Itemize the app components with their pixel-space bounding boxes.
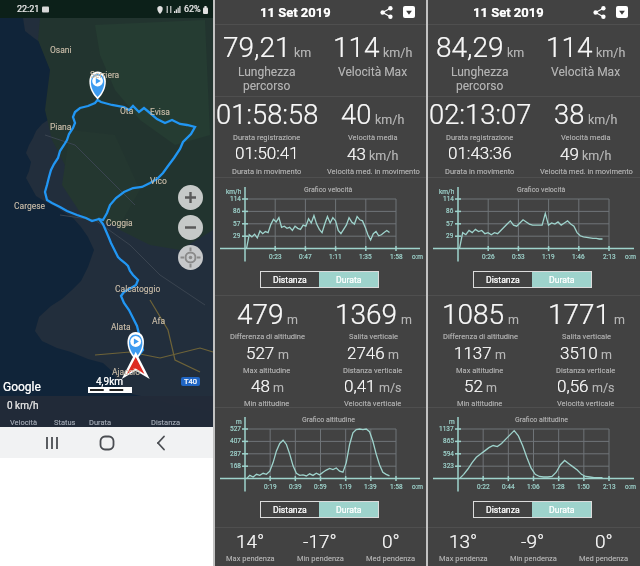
staticText: 1:35 — [359, 253, 372, 261]
staticText: 594 — [443, 450, 454, 458]
staticText: 48 — [251, 376, 270, 396]
staticText: Velocità med. in movimento — [540, 167, 633, 176]
staticText: 38 — [554, 99, 585, 131]
staticText: 1:50 — [577, 483, 590, 491]
button[interactable]: Recent apps — [39, 430, 65, 456]
button[interactable]: Durata — [532, 501, 592, 518]
button[interactable]: Distanza — [473, 271, 532, 288]
staticText: Max pendenza — [439, 554, 488, 563]
staticText: Min altitudine — [244, 399, 290, 408]
staticText: m — [601, 347, 612, 362]
staticText: Durata — [549, 505, 575, 515]
staticText: Coggia — [106, 218, 133, 228]
staticText: Distanza — [273, 505, 307, 515]
button[interactable]: Back — [148, 430, 174, 456]
staticText: 0:44 — [502, 483, 515, 491]
staticText: Velocità media — [348, 133, 398, 142]
button[interactable]: Share — [587, 0, 611, 24]
staticText: Durata — [549, 275, 575, 285]
staticText: 0,41 — [344, 376, 376, 396]
staticText: Piana — [50, 122, 72, 132]
staticText: 0:53 — [512, 253, 525, 261]
staticText: m — [495, 347, 506, 362]
button[interactable]: Durata — [532, 271, 592, 288]
staticText: 865 — [443, 437, 454, 445]
staticText: 40 — [341, 99, 372, 131]
staticText: o:m — [412, 483, 423, 491]
staticText: Differenza di altitudine — [230, 332, 305, 341]
staticText: m — [287, 312, 298, 327]
staticText: Durata in movimento — [445, 167, 515, 176]
staticText: m — [273, 380, 284, 395]
staticText: 0,56 — [557, 376, 589, 396]
staticText: 168 — [230, 462, 241, 470]
staticText: o:m — [625, 253, 636, 261]
staticText: 0:23 — [269, 253, 282, 261]
staticText: Durata registrazione — [446, 133, 514, 142]
staticText: 0:26 — [482, 253, 495, 261]
staticText: 527 — [246, 343, 275, 363]
button[interactable]: Share — [374, 0, 398, 24]
button[interactable]: Distanza — [0, 396, 213, 427]
staticText: 114 — [333, 31, 380, 64]
staticText: Max altitudine — [456, 366, 504, 375]
staticText: 52 — [464, 376, 483, 396]
staticText: 49 — [560, 144, 579, 164]
staticText: Salita verticale — [349, 332, 398, 341]
staticText: Google — [3, 380, 41, 394]
staticText: m — [508, 312, 519, 327]
staticText: Durata — [336, 505, 362, 515]
button[interactable]: Zoom out — [178, 215, 203, 240]
button[interactable]: Download — [610, 0, 634, 24]
staticText: 0:47 — [299, 253, 312, 261]
button[interactable]: Durata — [0, 396, 213, 427]
staticText: km/h — [439, 188, 455, 196]
button[interactable]: Distanza — [260, 271, 319, 288]
button[interactable]: Distanza — [260, 501, 319, 518]
staticText: km/h — [369, 148, 399, 163]
staticText: m — [449, 418, 455, 426]
staticText: 323 — [443, 462, 454, 470]
staticText: 1:11 — [329, 253, 342, 261]
staticText: 0:59 — [314, 483, 327, 491]
staticText: 1137 — [454, 343, 492, 363]
staticText: m — [614, 312, 625, 327]
button[interactable]: Status — [0, 396, 213, 427]
staticText: 1:06 — [527, 483, 540, 491]
staticText: m — [388, 347, 399, 362]
staticText: 13° — [449, 530, 478, 552]
button[interactable]: Home — [94, 430, 120, 456]
button[interactable]: Distanza — [473, 501, 532, 518]
staticText: 4,9km — [96, 376, 124, 388]
staticText: Afa — [152, 316, 166, 326]
staticText: 1:19 — [339, 483, 352, 491]
staticText: Differenza di altitudine — [443, 332, 518, 341]
staticText: Durata — [336, 275, 362, 285]
staticText: m/s — [592, 380, 615, 395]
staticText: Distanza verticale — [343, 366, 403, 375]
staticText: percorso — [243, 79, 291, 93]
staticText: Lunghezza — [451, 65, 509, 79]
button[interactable]: Velocità — [0, 396, 213, 427]
staticText: Velocità Max — [551, 65, 621, 79]
staticText: -9° — [521, 530, 545, 552]
staticText: Velocità Max — [338, 65, 408, 79]
staticText: km — [507, 45, 525, 60]
staticText: 0:19 — [264, 483, 277, 491]
button[interactable]: Durata — [319, 501, 379, 518]
staticText: Alata — [111, 322, 131, 332]
staticText: m — [278, 347, 289, 362]
staticText: 01:43:36 — [448, 143, 512, 163]
staticText: m/s — [379, 380, 402, 395]
staticText: km/h — [588, 112, 618, 127]
button[interactable]: Zoom in — [178, 185, 203, 210]
button[interactable]: My location — [178, 245, 203, 270]
staticText: 2:13 — [603, 483, 616, 491]
staticText: 0 km/h — [7, 400, 39, 412]
staticText: 84,29 — [436, 31, 504, 64]
button[interactable]: Durata — [319, 271, 379, 288]
button[interactable]: Download — [397, 0, 421, 24]
staticText: 11 Set 2019 — [473, 5, 544, 20]
staticText: 1771 — [548, 298, 611, 331]
staticText: 0:39 — [289, 483, 302, 491]
